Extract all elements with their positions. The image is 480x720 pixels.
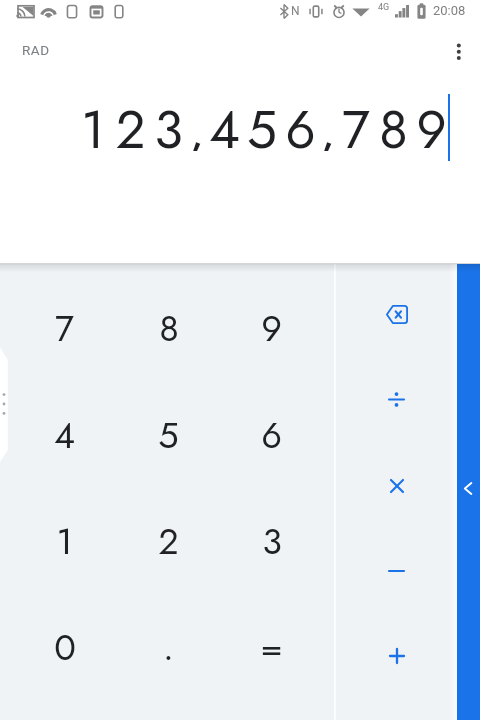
other: Plus (390, 649, 404, 663)
other: Multiply (391, 480, 403, 492)
button[interactable]: 9 (220, 275, 323, 381)
button[interactable]: Resize keypad (0, 344, 9, 465)
button[interactable]: 7 (13, 275, 116, 381)
staticText: 6 (285, 91, 316, 151)
staticText: 0 (54, 621, 76, 673)
staticText: 8 (379, 91, 408, 151)
staticText: , (188, 91, 205, 151)
button[interactable]: 3 (220, 488, 323, 594)
staticText: 4 (209, 91, 240, 151)
button[interactable]: 6 (220, 382, 323, 488)
staticText: 4G (378, 2, 390, 13)
button[interactable]: More options (435, 27, 480, 73)
button[interactable]: 1 (13, 488, 116, 594)
button[interactable]: Show scientific keypad (457, 264, 480, 720)
staticText: 2 (158, 515, 179, 567)
staticText: 9 (416, 91, 447, 151)
staticText: . (163, 621, 174, 673)
other: Minus (389, 564, 404, 578)
staticText: 1 (81, 91, 105, 151)
button[interactable]: Divide (336, 356, 457, 442)
staticText: , (319, 91, 336, 151)
button[interactable]: 0 (13, 594, 116, 700)
staticText: 2 (115, 91, 146, 151)
staticText: RAD (22, 42, 50, 58)
button[interactable]: Minus (336, 528, 457, 614)
button[interactable]: Delete (336, 271, 457, 357)
button[interactable]: RAD (10, 35, 62, 65)
staticText: 5 (247, 91, 277, 151)
button[interactable]: = (220, 594, 323, 700)
staticText: = (260, 621, 283, 673)
staticText: 1 (56, 515, 73, 567)
button[interactable]: 5 (117, 382, 220, 488)
staticText: 8 (159, 302, 179, 354)
button[interactable]: Multiply (336, 442, 457, 528)
staticText: N (291, 4, 300, 18)
button[interactable]: 4 (13, 382, 116, 488)
staticText: 9 (261, 302, 282, 354)
button[interactable]: 2 (117, 488, 220, 594)
button[interactable]: Plus (336, 613, 457, 699)
other: Delete (385, 305, 408, 324)
staticText: 3 (154, 91, 183, 151)
button[interactable]: 8 (117, 275, 220, 381)
staticText: 7 (55, 302, 74, 354)
staticText: 7 (342, 91, 370, 151)
other: Divide (389, 392, 404, 407)
staticText: 4 (54, 409, 75, 461)
staticText: 5 (158, 409, 179, 461)
staticText: 20:08 (433, 3, 466, 18)
button[interactable]: . (117, 594, 220, 700)
staticText: 3 (262, 515, 282, 567)
staticText: 6 (261, 409, 282, 461)
